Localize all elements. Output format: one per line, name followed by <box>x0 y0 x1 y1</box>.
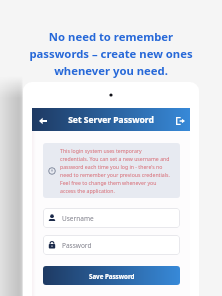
button[interactable]: Log out <box>169 108 190 131</box>
button[interactable]: Back <box>32 108 53 131</box>
staticText: Save Password <box>89 272 135 280</box>
staticText: No need to remember passwords – create n… <box>29 29 193 79</box>
staticText: Password <box>62 241 92 250</box>
staticText: This login system uses temporary credent… <box>60 147 170 194</box>
button[interactable]: Save Password <box>43 266 180 285</box>
button[interactable]: Username <box>43 208 180 228</box>
button[interactable]: Password <box>43 235 180 255</box>
staticText: Set Server Password <box>53 114 169 126</box>
staticText: Username <box>62 214 94 223</box>
